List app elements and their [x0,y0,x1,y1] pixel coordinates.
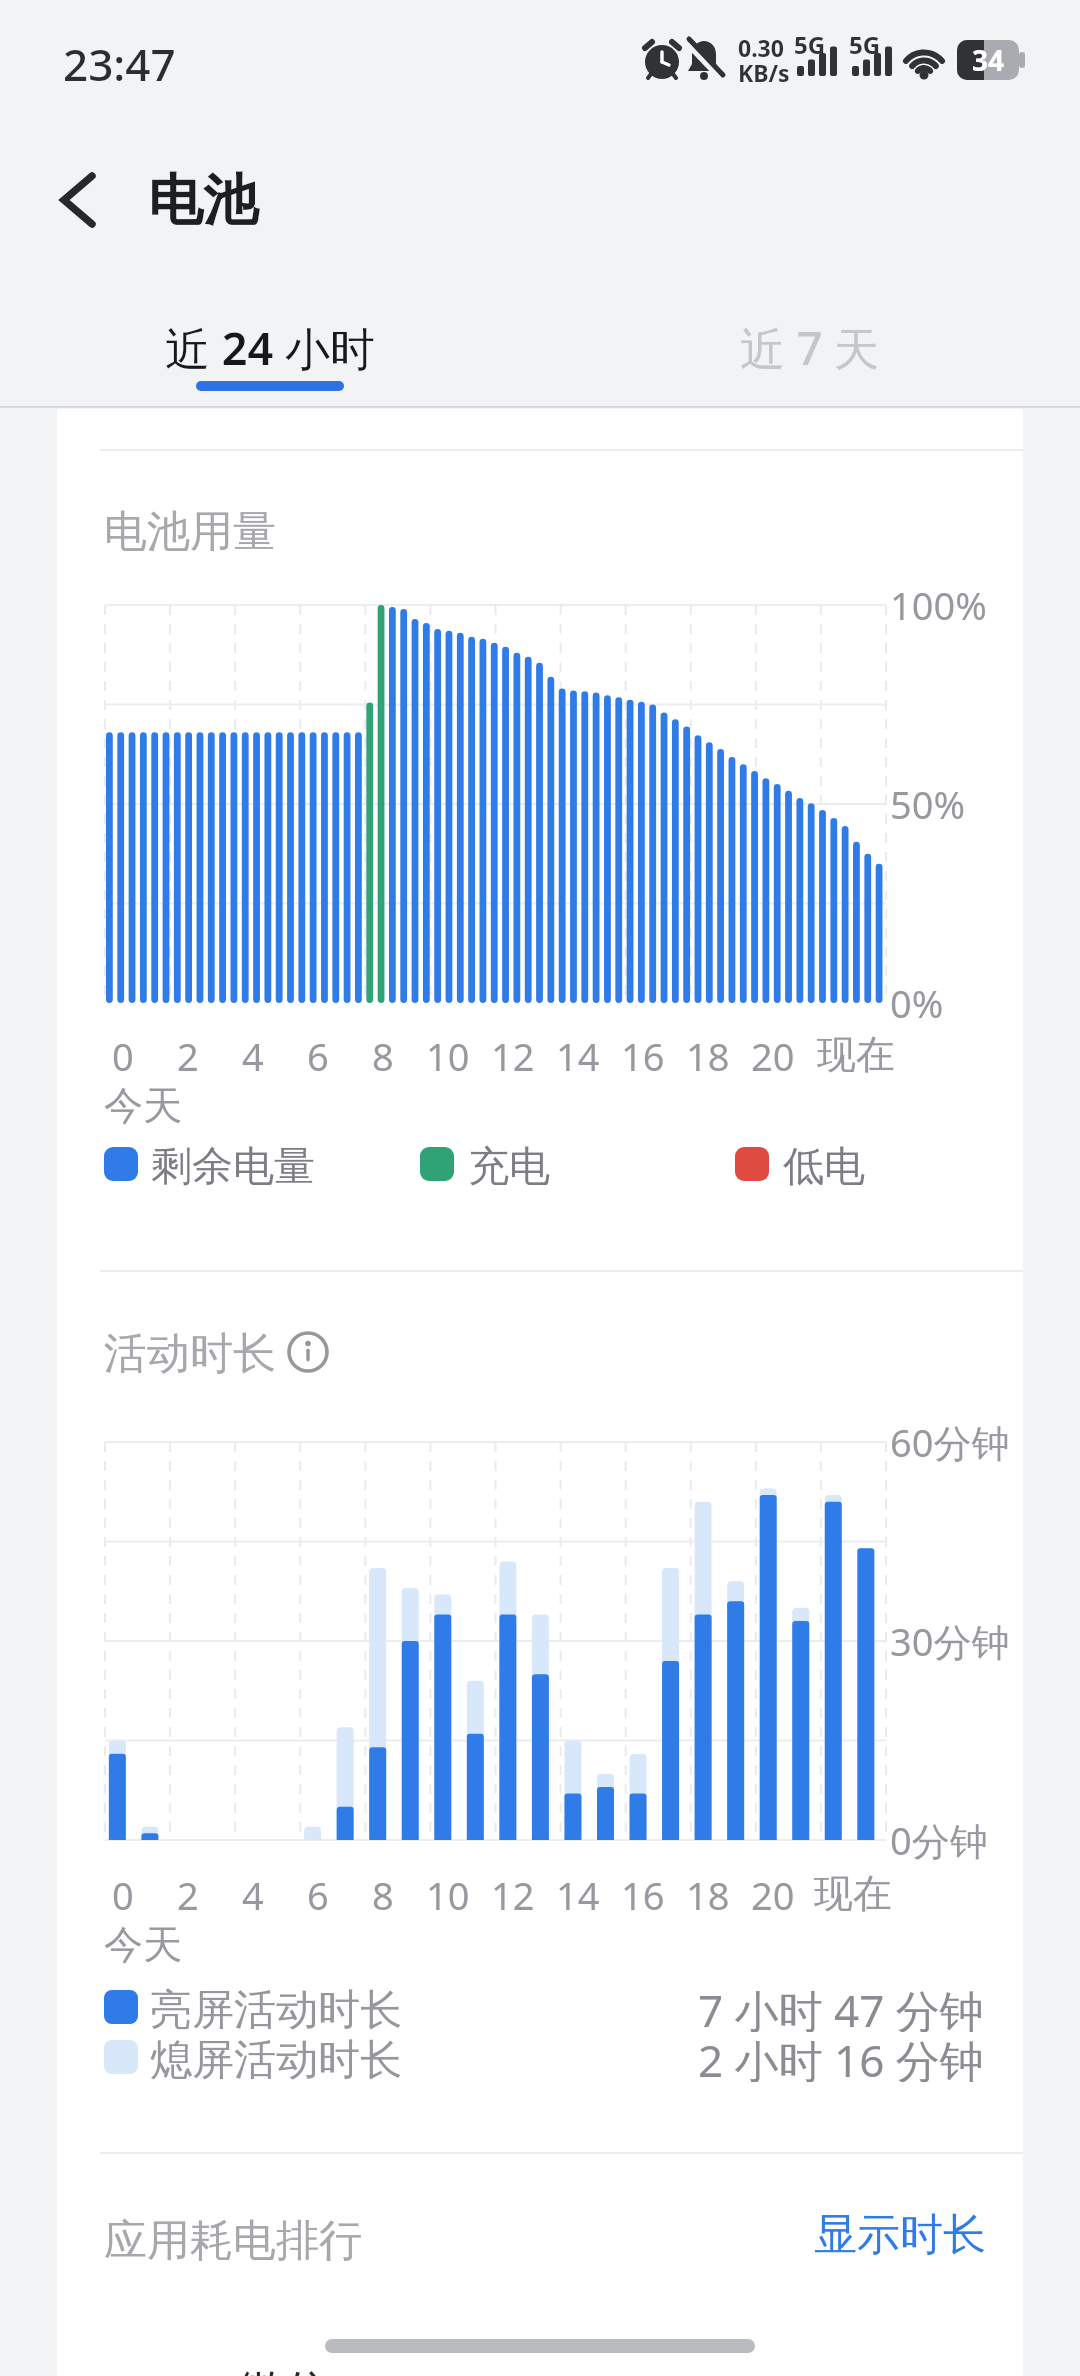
staticText: 12 [491,1869,535,1919]
staticText: KB/s [738,57,790,88]
staticText: 应用耗电排行 [104,2214,362,2268]
button[interactable] [284,1328,332,1376]
staticText: 4 [242,1869,264,1919]
staticText: 6 [307,1030,329,1080]
staticText: 5G [794,28,826,61]
staticText: 2 [177,1030,199,1080]
staticText: 显示时长 [814,2208,986,2262]
staticText: 电池 [148,166,258,235]
staticText: 剩余电量 [151,1141,315,1193]
staticText: 熄屏活动时长 [150,2034,402,2087]
staticText: 2 [177,1869,199,1919]
button[interactable]: 近 24 小时 [60,312,480,382]
staticText: 亮屏活动时长 [150,1984,402,2037]
staticText: 电池用量 [104,505,276,559]
staticText: 8 [372,1869,394,1919]
staticText: 10 [426,1030,470,1080]
staticText: 0 [112,1030,134,1080]
staticText: 23:47 [63,34,176,94]
button[interactable]: 显示时长 [780,2204,986,2266]
staticText: 16 [621,1030,665,1080]
staticText: 7 小时 47 分钟 [698,1980,984,2032]
staticText: 50% [890,778,966,830]
staticText: 10 [426,1869,470,1919]
staticText: 今天 [104,1081,182,1130]
staticText: 14 [556,1030,600,1080]
staticText: 2 小时 16 分钟 [698,2030,984,2082]
staticText: 20 [751,1030,795,1080]
staticText: 8 [372,1030,394,1080]
staticText: 6 [307,1869,329,1919]
staticText: 100% [890,579,987,631]
staticText: 14 [556,1869,600,1919]
staticText: 充电 [468,1141,550,1193]
staticText: 低电 [783,1141,865,1193]
staticText: 18 [686,1030,730,1080]
staticText: 近 7 天 [740,317,880,378]
staticText: 0.30 [738,32,784,63]
staticText: 4 [242,1030,264,1080]
staticText: 18 [686,1869,730,1919]
button[interactable] [40,160,120,240]
staticText: 现在 [817,1030,895,1079]
staticText: 20 [751,1869,795,1919]
staticText: 30分钟 [890,1615,1010,1667]
staticText: 16 [621,1869,665,1919]
staticText: 0分钟 [890,1814,988,1866]
staticText: 34 [972,41,1005,79]
staticText: 5G [849,28,881,61]
button[interactable]: 近 7 天 [600,312,1020,382]
button[interactable] [57,2356,1023,2376]
staticText: 微信 [238,2364,330,2376]
staticText: 0% [890,977,944,1029]
staticText: 近 24 小时 [165,317,375,378]
staticText: 12 [491,1030,535,1080]
staticText: 活动时长 [104,1327,276,1381]
staticText: 0 [112,1869,134,1919]
staticText: 60分钟 [890,1416,1010,1468]
staticText: 现在 [814,1869,892,1918]
staticText: 今天 [104,1920,182,1969]
